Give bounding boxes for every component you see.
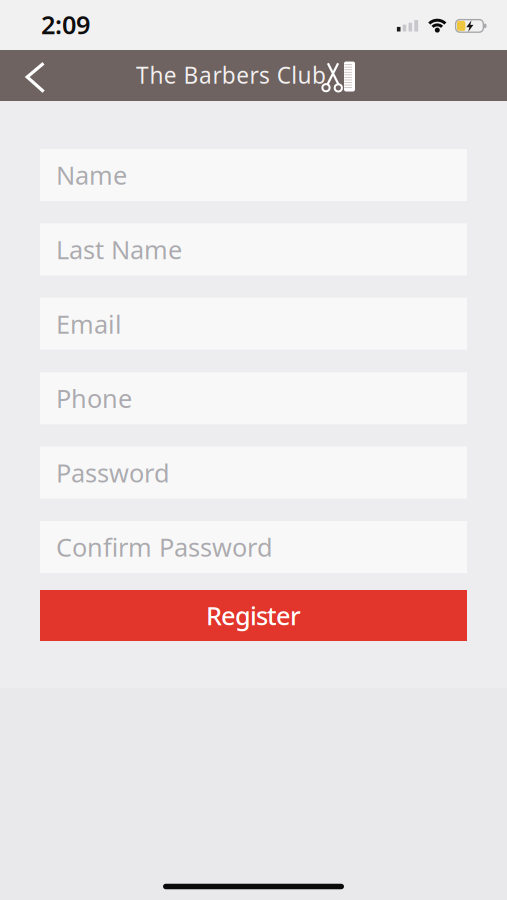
staticText: Name (56, 158, 127, 192)
textField[interactable]: Confirm Password (40, 521, 467, 573)
staticText: Email (56, 307, 122, 341)
staticText: The Barbers Club (136, 60, 326, 90)
staticText: Confirm Password (56, 530, 273, 564)
textField[interactable]: Password (40, 447, 467, 499)
staticText: Phone (56, 381, 132, 415)
textField[interactable]: Email (40, 298, 467, 350)
staticText: Password (56, 456, 170, 489)
textField[interactable]: Name (40, 149, 467, 201)
textField[interactable]: Phone (40, 372, 467, 424)
staticText: Register (206, 599, 301, 632)
textField[interactable]: Last Name (40, 223, 467, 275)
button[interactable]: Back (13, 56, 57, 100)
button[interactable]: Register (40, 590, 467, 641)
staticText: Last Name (56, 233, 182, 266)
staticText: 2:09 (41, 8, 90, 41)
